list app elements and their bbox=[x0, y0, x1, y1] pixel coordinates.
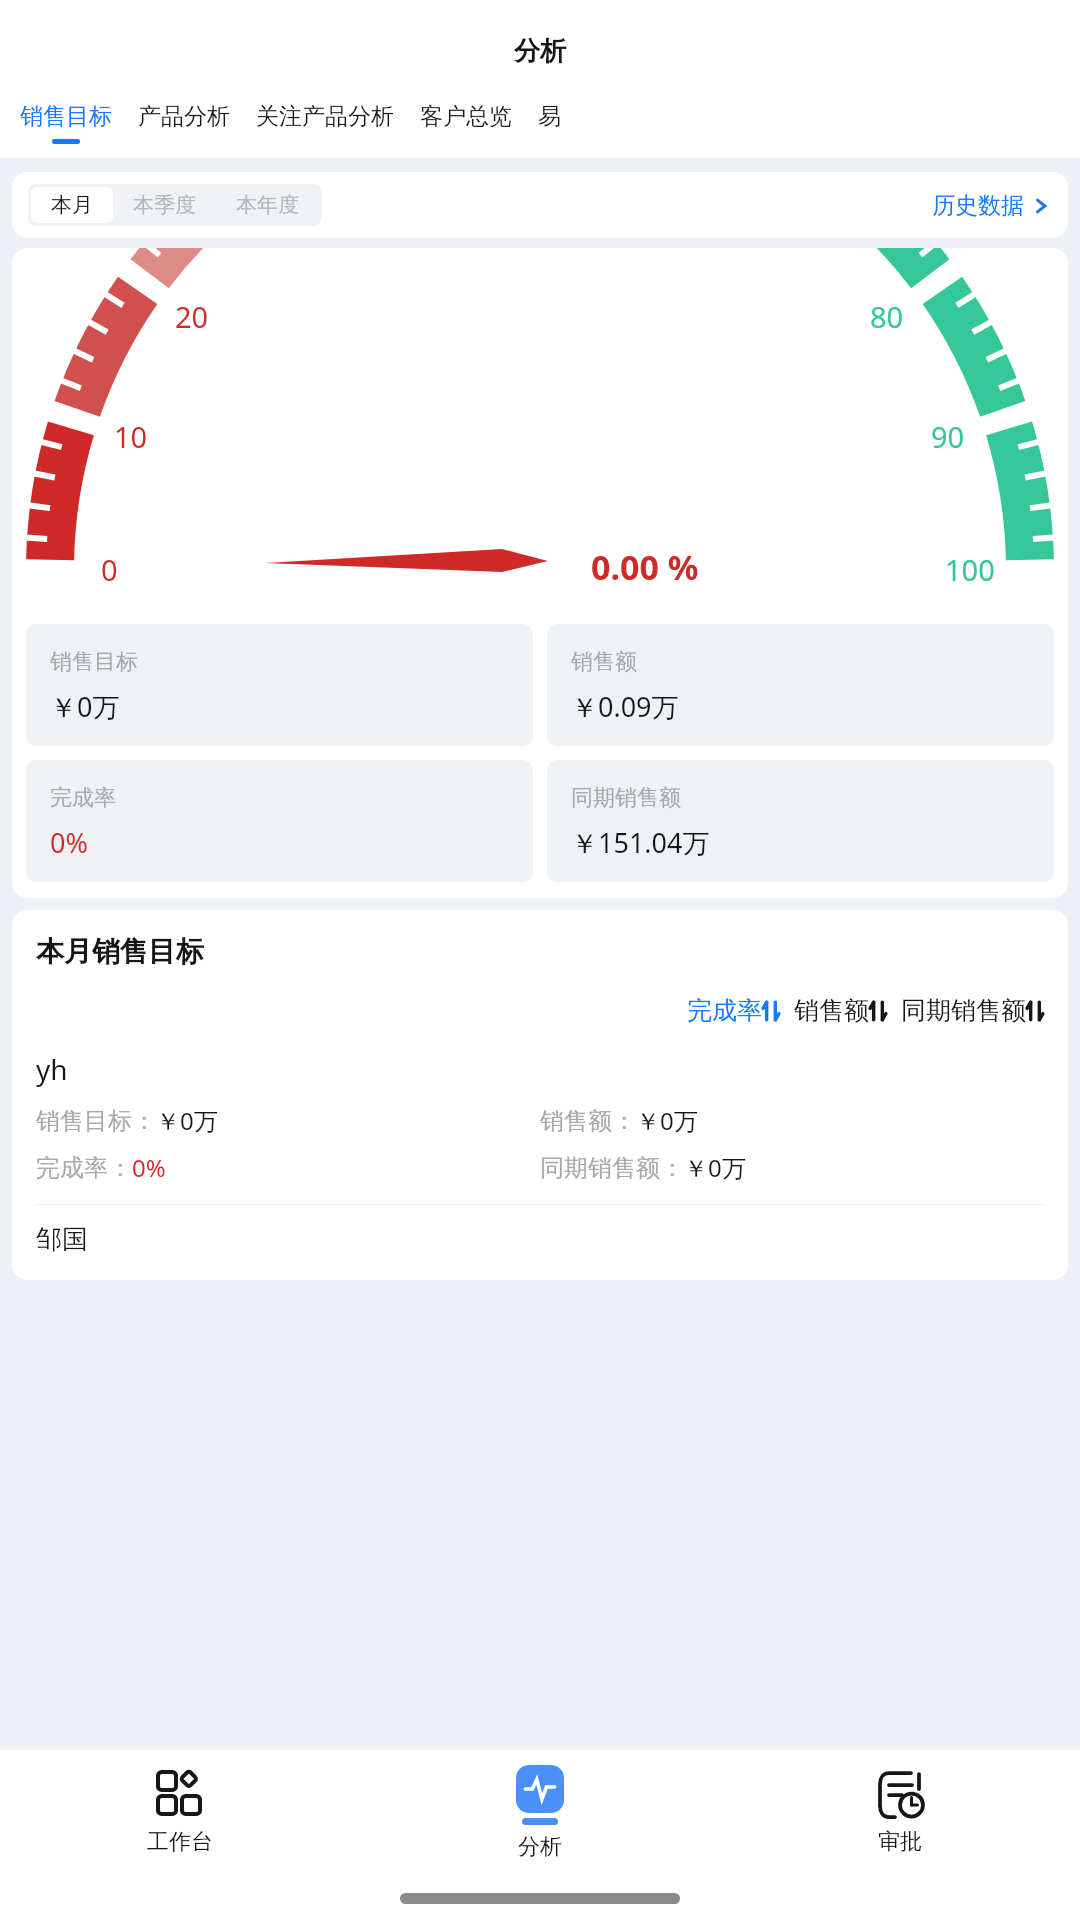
button[interactable]: 同期销售额 bbox=[901, 995, 1044, 1026]
staticText: 10 bbox=[114, 417, 148, 456]
other: 工作台 bbox=[155, 1770, 205, 1820]
staticText: ￥0万 bbox=[636, 1104, 698, 1137]
staticText: 分析 bbox=[518, 1833, 562, 1861]
staticText: 0 bbox=[101, 550, 118, 589]
button[interactable]: 完成率 bbox=[687, 995, 780, 1026]
button[interactable]: 完成率 bbox=[26, 760, 533, 882]
button[interactable]: 本季度 bbox=[113, 187, 216, 223]
button[interactable]: 本月 bbox=[31, 187, 113, 223]
staticText: 销售目标： bbox=[36, 1106, 156, 1136]
button[interactable]: 销售额 bbox=[794, 995, 887, 1026]
staticText: 80 bbox=[870, 297, 904, 336]
other: 审批 bbox=[875, 1770, 925, 1820]
button[interactable]: yh bbox=[36, 1050, 1044, 1204]
staticText: 同期销售额 bbox=[901, 995, 1026, 1026]
staticText: 易 bbox=[538, 102, 561, 131]
staticText: 历史数据 bbox=[932, 191, 1024, 220]
other: 分析 bbox=[516, 1765, 564, 1813]
staticText: 销售额 bbox=[794, 995, 869, 1026]
button[interactable]: 销售目标 bbox=[26, 624, 533, 746]
staticText: 100 bbox=[945, 550, 995, 589]
staticText: 产品分析 bbox=[138, 102, 230, 131]
staticText: ￥0.09万 bbox=[571, 688, 679, 725]
button[interactable]: 同期销售额 bbox=[547, 760, 1054, 882]
staticText: 同期销售额： bbox=[540, 1153, 684, 1183]
staticText: 本月销售目标 bbox=[36, 934, 204, 969]
staticText: 工作台 bbox=[147, 1828, 213, 1856]
staticText: 90 bbox=[931, 417, 965, 456]
button[interactable]: 本年度 bbox=[216, 187, 319, 223]
button[interactable]: 产品分析 bbox=[138, 102, 230, 139]
staticText: 本季度 bbox=[133, 192, 196, 218]
staticText: ￥151.04万 bbox=[571, 824, 710, 861]
staticText: 0.00 % bbox=[591, 544, 699, 590]
staticText: 0% bbox=[132, 1151, 166, 1184]
button[interactable]: 关注产品分析 bbox=[256, 102, 394, 139]
button[interactable]: 分析 bbox=[360, 1750, 720, 1876]
staticText: 本年度 bbox=[236, 192, 299, 218]
button[interactable]: 销售额 bbox=[547, 624, 1054, 746]
staticText: 销售目标 bbox=[20, 102, 112, 131]
staticText: 同期销售额 bbox=[571, 784, 681, 812]
staticText: 销售目标 bbox=[50, 648, 138, 676]
button[interactable]: 易 bbox=[538, 102, 561, 139]
button[interactable]: 销售目标 bbox=[20, 102, 112, 144]
button[interactable]: 历史数据 bbox=[932, 191, 1052, 220]
staticText: 分析 bbox=[514, 35, 566, 68]
staticText: 20 bbox=[175, 297, 209, 336]
staticText: 本月 bbox=[51, 192, 93, 218]
staticText: ￥0万 bbox=[50, 688, 120, 725]
staticText: ￥0万 bbox=[684, 1151, 746, 1184]
staticText: 邹国 bbox=[36, 1223, 88, 1256]
staticText: 审批 bbox=[878, 1828, 922, 1856]
button[interactable]: 客户总览 bbox=[420, 102, 512, 139]
button[interactable]: 工作台 bbox=[0, 1750, 360, 1876]
staticText: 关注产品分析 bbox=[256, 102, 394, 131]
staticText: yh bbox=[36, 1050, 68, 1088]
staticText: 0% bbox=[50, 824, 88, 861]
button[interactable]: 审批 bbox=[720, 1750, 1080, 1876]
staticText: 销售额： bbox=[540, 1106, 636, 1136]
staticText: 客户总览 bbox=[420, 102, 512, 131]
staticText: 销售额 bbox=[571, 648, 637, 676]
staticText: 完成率 bbox=[687, 995, 762, 1026]
staticText: ￥0万 bbox=[156, 1104, 218, 1137]
staticText: 完成率 bbox=[50, 784, 116, 812]
staticText: 完成率： bbox=[36, 1153, 132, 1183]
